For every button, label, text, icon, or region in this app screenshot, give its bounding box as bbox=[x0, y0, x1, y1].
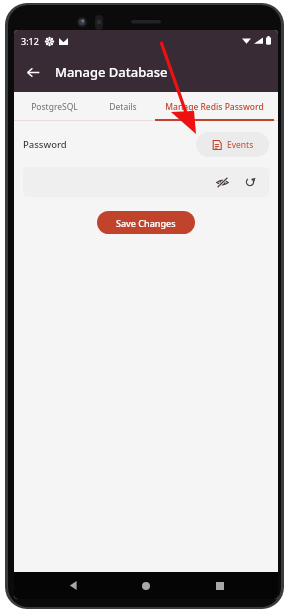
button[interactable]: Back bbox=[20, 59, 46, 85]
button[interactable]: Events bbox=[196, 132, 269, 157]
button[interactable]: Save Changes bbox=[97, 211, 195, 234]
button[interactable]: Show password bbox=[212, 172, 232, 192]
button[interactable]: Regenerate password bbox=[240, 172, 260, 192]
staticText: 3:12 bbox=[21, 35, 39, 47]
staticText: Events bbox=[227, 139, 254, 151]
staticText: Manage Database bbox=[55, 63, 168, 81]
staticText: Save Changes bbox=[116, 217, 176, 229]
button[interactable]: Show password bbox=[23, 167, 269, 197]
button[interactable]: PostgreSQL bbox=[14, 92, 94, 121]
button[interactable]: Manage Redis Password bbox=[151, 92, 278, 121]
button[interactable]: Details bbox=[94, 92, 151, 121]
button[interactable]: Home bbox=[131, 572, 161, 599]
button[interactable]: Recent apps bbox=[205, 572, 235, 599]
button[interactable]: Back bbox=[58, 572, 88, 599]
staticText: Details bbox=[109, 101, 137, 113]
staticText: Password bbox=[23, 138, 67, 151]
staticText: PostgreSQL bbox=[31, 101, 78, 113]
staticText: Manage Redis Password bbox=[165, 101, 264, 113]
